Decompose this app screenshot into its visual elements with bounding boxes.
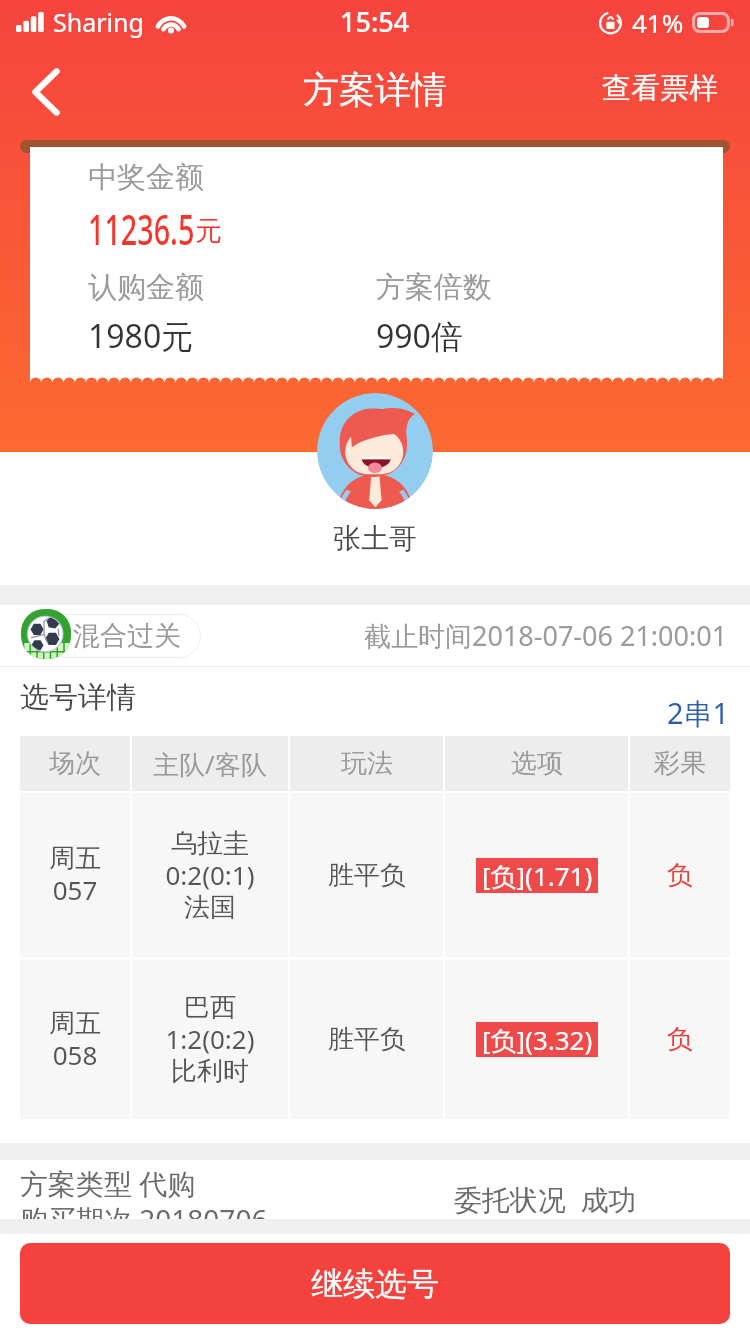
staticText: 15:54 (340, 3, 410, 40)
button[interactable]: 2串1 (667, 693, 730, 733)
staticText: [负](1.71) (482, 858, 593, 893)
staticText: 张土哥 (0, 521, 750, 556)
staticText: 选号详情 (20, 679, 136, 716)
staticText: 场次 (49, 747, 101, 780)
staticText: 元 (195, 214, 222, 248)
staticText: 负 (667, 859, 693, 892)
staticText: 方案详情 (303, 67, 447, 112)
staticText: 中奖金额 (88, 159, 204, 196)
staticText: 混合过关 (73, 619, 181, 653)
staticText: 主队/客队 (153, 746, 267, 782)
staticText: 11236.5 (88, 201, 194, 253)
staticText: 彩果 (654, 747, 706, 780)
staticText: Sharing (53, 5, 144, 39)
staticText: 胜平负 (328, 1023, 406, 1056)
staticText: 继续选号 (311, 1264, 439, 1304)
button[interactable]: Back (0, 44, 92, 140)
staticText: 41% (632, 5, 684, 40)
staticText: 1980元 (88, 314, 194, 358)
staticText: 负 (667, 1023, 693, 1056)
staticText: 购买期次 20180706 (20, 1200, 268, 1238)
staticText: 方案倍数 (376, 269, 492, 306)
button[interactable]: 混合过关 (44, 614, 201, 658)
staticText: 990倍 (376, 314, 463, 358)
staticText: 2串1 (667, 693, 730, 733)
button[interactable]: 继续选号 (20, 1243, 730, 1324)
button[interactable]: 查看票样 (590, 60, 730, 117)
staticText: 选项 (511, 747, 563, 780)
button[interactable]: 周五 058 (20, 960, 730, 1119)
staticText: 认购金额 (88, 269, 204, 306)
staticText: 委托状况 成功 (454, 1180, 637, 1218)
staticText: 周五 058 (49, 1007, 101, 1073)
staticText: 巴西 1:2(0:2) 比利时 (165, 991, 255, 1088)
staticText: 方案类型 代购 (20, 1164, 196, 1202)
staticText: 周五 057 (49, 842, 101, 908)
staticText: 截止时间2018-07-06 21:00:01 (364, 617, 728, 654)
staticText: [负](3.32) (482, 1022, 593, 1057)
staticText: 乌拉圭 0:2(0:1) 法国 (165, 827, 255, 924)
button[interactable]: 周五 057 (20, 793, 730, 957)
staticText: 胜平负 (328, 859, 406, 892)
staticText: 查看票样 (602, 70, 718, 107)
staticText: 玩法 (341, 747, 393, 780)
